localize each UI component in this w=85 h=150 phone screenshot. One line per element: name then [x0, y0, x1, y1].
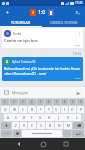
button[interactable]: D — [20, 114, 28, 121]
button[interactable]: G — [36, 114, 45, 121]
button[interactable]: O — [69, 106, 76, 113]
button[interactable]: Attach image — [3, 89, 10, 96]
button[interactable]: C — [28, 122, 36, 129]
staticText: 16:31 — [74, 43, 81, 46]
staticText: A — [7, 116, 10, 120]
staticText: O — [71, 108, 74, 112]
button[interactable]: M — [64, 122, 72, 129]
staticText: Aykut Trabzon92 — [12, 60, 36, 64]
button[interactable]: 1 — [1, 99, 9, 105]
staticText: 5 — [40, 100, 42, 104]
staticText: G — [39, 116, 42, 120]
staticText: Q — [4, 108, 7, 112]
button[interactable]: X — [20, 122, 27, 129]
button[interactable]: Shift — [1, 122, 11, 129]
button[interactable]: 7 — [53, 99, 60, 105]
staticText: 0 — [80, 100, 82, 104]
button[interactable]: Q — [1, 106, 9, 113]
staticText: T — [40, 108, 42, 112]
button[interactable]: F — [28, 114, 36, 121]
button[interactable]: Z — [12, 122, 19, 129]
button[interactable]: YORUMLAR — [0, 18, 42, 26]
button[interactable]: Send — [74, 89, 82, 97]
button[interactable]: 4 — [28, 99, 36, 105]
staticText: W — [13, 108, 16, 112]
staticText: S — [15, 116, 17, 120]
button[interactable]: Settings — [73, 8, 82, 17]
button[interactable]: W — [10, 106, 18, 113]
button[interactable]: 0 — [77, 99, 84, 105]
staticText: 1:0 — [38, 9, 46, 16]
button[interactable]: R — [28, 106, 36, 113]
staticText: A — [6, 60, 8, 64]
button[interactable]: Y — [45, 106, 52, 113]
button[interactable]: Furkn — [2, 28, 83, 48]
button[interactable]: Team 2 — [48, 9, 54, 16]
button[interactable]: Back — [3, 8, 12, 17]
button[interactable]: Home — [38, 139, 48, 149]
button[interactable]: U — [53, 106, 60, 113]
staticText: 7 — [56, 100, 58, 104]
staticText: 17:35 — [75, 1, 83, 5]
staticText: ?123 — [4, 132, 9, 135]
button[interactable]: Emoji — [13, 130, 21, 137]
staticText: 4 — [31, 100, 33, 104]
staticText: Mesaj yaz — [12, 90, 74, 95]
button[interactable]: T — [37, 106, 44, 113]
staticText: ONEMLI DURUM — [50, 20, 78, 25]
staticText: M — [67, 124, 70, 128]
button[interactable] — [22, 130, 62, 137]
button[interactable]: Team 1 — [30, 9, 36, 16]
staticText: YORUMLAR — [11, 20, 31, 25]
staticText: Z — [15, 124, 17, 128]
button[interactable]: Recents — [61, 139, 71, 149]
button[interactable]: 6 — [45, 99, 52, 105]
button[interactable]: Enter — [72, 130, 84, 137]
staticText: Bohaaihood mi çOk buzlarıdır bir bahis f… — [4, 66, 81, 76]
staticText: 6 — [48, 100, 50, 104]
button[interactable]: 5 — [37, 99, 44, 105]
staticText: I — [64, 108, 66, 112]
button[interactable]: B — [46, 122, 54, 129]
staticText: 8 — [64, 100, 66, 104]
staticText: 3 — [22, 100, 24, 104]
button[interactable]: ONEMLI DURUM — [42, 18, 85, 26]
button[interactable]: Backspace — [73, 122, 84, 129]
staticText: P — [80, 108, 82, 112]
button[interactable]: I — [61, 106, 68, 113]
button[interactable]: E — [19, 106, 27, 113]
staticText: E — [22, 108, 24, 112]
button[interactable]: 9 — [69, 99, 76, 105]
staticText: . — [67, 132, 68, 136]
button[interactable]: 3 — [19, 99, 27, 105]
staticText: R — [31, 108, 33, 112]
staticText: 9 — [72, 100, 74, 104]
button[interactable]: Back — [14, 139, 24, 149]
staticText: F — [31, 116, 33, 120]
button[interactable]: S — [12, 114, 20, 121]
staticText: J — [58, 116, 59, 120]
button[interactable]: N — [55, 122, 63, 129]
button[interactable]: L — [72, 114, 81, 121]
button[interactable]: A — [2, 57, 83, 81]
staticText: K — [67, 116, 69, 120]
staticText: ⋮ — [77, 31, 81, 36]
button[interactable]: 2 — [10, 99, 18, 105]
staticText: 16:33 — [73, 52, 81, 56]
button[interactable]: P — [77, 106, 84, 113]
staticText: X — [23, 124, 25, 128]
button[interactable]: 8 — [61, 99, 68, 105]
button[interactable]: H — [45, 114, 54, 121]
staticText: B — [49, 124, 52, 128]
staticText: N — [58, 124, 61, 128]
button[interactable]: J — [54, 114, 63, 121]
button[interactable]: V — [37, 122, 45, 129]
button[interactable]: K — [63, 114, 72, 121]
staticText: U — [55, 108, 58, 112]
staticText: Canim ne işin bos — [4, 38, 38, 43]
button[interactable]: A — [4, 114, 12, 121]
button[interactable]: ?123 — [1, 130, 12, 137]
staticText: V — [40, 124, 42, 128]
staticText: L — [76, 116, 78, 120]
